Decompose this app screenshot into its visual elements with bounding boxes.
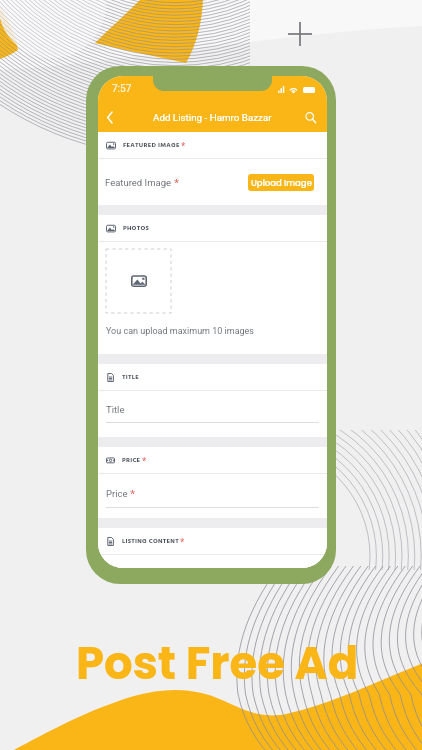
staticText: Upload Image [251,177,312,189]
button[interactable]: Search [300,107,320,127]
staticText: LISTING CONTENT [122,536,179,546]
staticText: Post Free Ad [76,632,359,695]
button[interactable]: Back [100,107,120,127]
staticText: * [174,176,180,189]
staticText: 7:57 [112,83,132,95]
staticText: TITLE [122,372,140,382]
button[interactable]: Upload Image [248,174,314,191]
staticText: You can upload maximum 10 images [106,326,255,337]
staticText: * [181,140,186,151]
staticText: PHOTOS [123,223,150,233]
staticText: Featured Image [105,177,172,188]
staticText: * [142,455,147,466]
staticText: FEATURED IMAGE [123,140,180,150]
staticText: Title [106,404,125,415]
staticText: PRICE [122,455,141,465]
staticText: Add Listing - Hamro Bazzar [153,112,272,123]
staticText: * [130,487,136,500]
staticText: * [180,536,185,547]
button[interactable]: Add photo [106,249,171,313]
staticText: Price [106,488,128,499]
